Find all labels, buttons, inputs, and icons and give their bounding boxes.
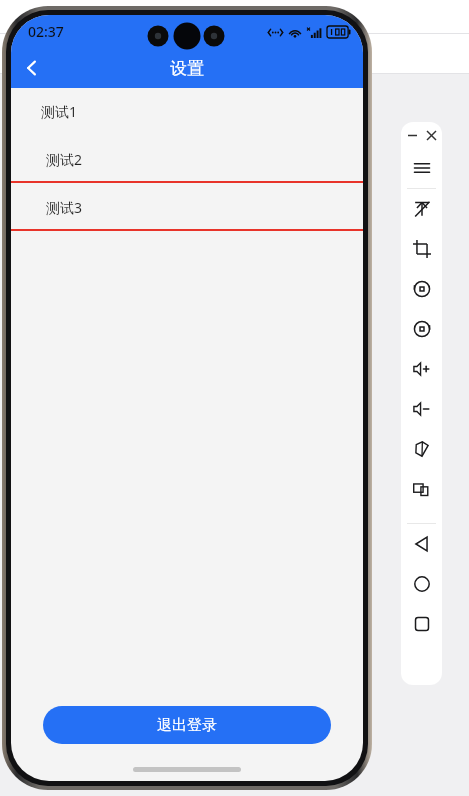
button[interactable]: Multi window xyxy=(401,469,442,509)
button[interactable]: Rotate counter clockwise xyxy=(401,269,442,309)
button[interactable]: Minimize xyxy=(405,128,419,142)
button[interactable]: Screenshot xyxy=(401,229,442,269)
button[interactable]: Home xyxy=(401,564,442,604)
staticText: 退出登录 xyxy=(157,716,217,735)
staticText: 测试1 xyxy=(41,102,78,121)
button[interactable]: 测试2 xyxy=(11,135,363,183)
staticText: 02:37 xyxy=(28,22,64,41)
button[interactable]: Rotate clockwise xyxy=(401,309,442,349)
staticText: 测试3 xyxy=(46,198,83,217)
staticText: 设置 xyxy=(170,58,204,79)
button[interactable]: Back xyxy=(401,524,442,564)
button[interactable]: 测试3 xyxy=(11,183,363,231)
button[interactable]: Volume up xyxy=(401,349,442,389)
staticText: 测试2 xyxy=(46,150,83,169)
button[interactable]: Recents xyxy=(401,604,442,644)
button[interactable]: Back xyxy=(11,48,53,88)
button[interactable]: Menu xyxy=(401,148,442,188)
button[interactable]: 测试1 xyxy=(11,88,363,135)
button[interactable]: 退出登录 xyxy=(43,706,331,744)
button[interactable]: Volume down xyxy=(401,389,442,429)
button[interactable]: Rotate left xyxy=(401,189,442,229)
button[interactable]: Close xyxy=(424,128,438,142)
button[interactable]: Fold xyxy=(401,429,442,469)
